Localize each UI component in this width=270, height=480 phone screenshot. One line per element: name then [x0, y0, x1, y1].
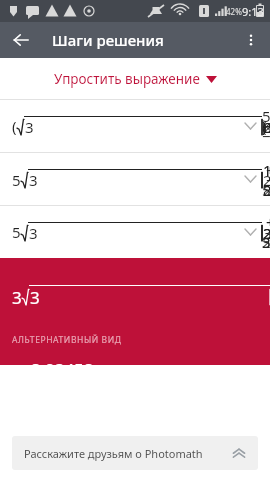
staticText: (: [12, 116, 17, 136]
button[interactable]: More options: [236, 25, 266, 55]
staticText: АЛЬТЕРНАТИВНЫЙ ВИД: [12, 334, 122, 346]
staticText: 3: [29, 223, 38, 243]
staticText: ≈ 8.02458: [12, 358, 94, 365]
staticText: 3: [12, 286, 22, 309]
staticText: 3: [25, 117, 34, 137]
staticText: Расскажите друзьям о Photomath: [24, 446, 203, 461]
button[interactable]: Back: [6, 25, 36, 55]
button[interactable]: Упростить выражение: [0, 58, 270, 99]
staticText: 3: [30, 286, 40, 309]
button[interactable]: 3: [0, 258, 270, 365]
staticText: Шаги решения: [52, 30, 164, 50]
button[interactable]: 5: [0, 153, 270, 205]
staticText: 42%: [226, 6, 242, 17]
button[interactable]: 5: [0, 206, 270, 258]
staticText: 9:13: [242, 4, 264, 19]
button[interactable]: Расскажите друзьям о Photomath: [12, 436, 258, 470]
button[interactable]: (: [0, 100, 270, 152]
staticText: 5: [12, 170, 21, 190]
staticText: 5: [12, 222, 21, 242]
staticText: Упростить выражение: [54, 70, 200, 88]
staticText: 3: [29, 170, 38, 190]
